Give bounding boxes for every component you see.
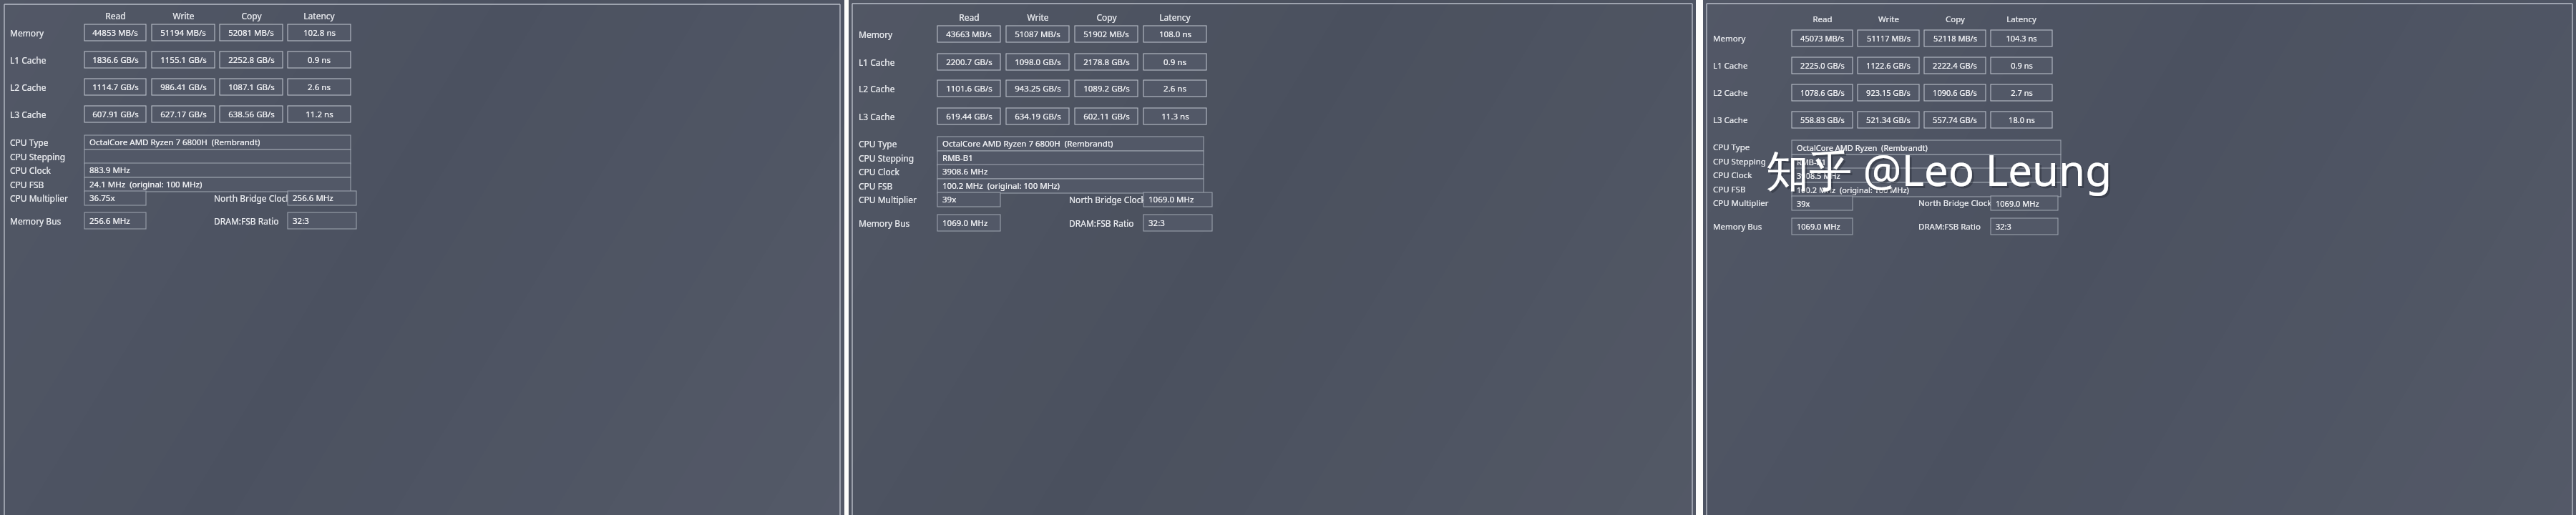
button[interactable]: 100.2 MHz (original: 100 MHz) <box>937 179 1204 193</box>
button[interactable]: 11.2 ns <box>288 106 351 122</box>
staticText: 1069.0 MHz <box>1148 194 1194 205</box>
staticText: 2178.8 GB/s <box>1083 57 1130 68</box>
staticText: 619.44 GB/s <box>946 111 992 122</box>
staticText: L3 Cache <box>859 111 895 122</box>
staticText: North Bridge Clock <box>214 192 291 204</box>
staticText: CPU Clock <box>1713 170 1752 181</box>
button[interactable]: 923.15 GB/s <box>1858 84 1919 101</box>
button[interactable]: 1114.7 GB/s <box>84 79 146 95</box>
button[interactable]: 1078.6 GB/s <box>1792 84 1853 101</box>
button[interactable]: 521.34 GB/s <box>1858 112 1919 128</box>
staticText: L1 Cache <box>1713 60 1748 72</box>
button[interactable]: 2.7 ns <box>1991 84 2052 101</box>
button[interactable]: 1101.6 GB/s <box>937 80 1000 97</box>
button[interactable]: 602.11 GB/s <box>1075 108 1138 124</box>
staticText: 923.15 GB/s <box>1866 87 1911 98</box>
button[interactable]: 2225.0 GB/s <box>1792 57 1853 74</box>
staticText: DRAM:FSB Ratio <box>214 215 279 227</box>
button[interactable]: 45073 MB/s <box>1792 30 1853 46</box>
button[interactable]: 24.1 MHz (original: 100 MHz) <box>84 177 351 192</box>
button[interactable]: 0.9 ns <box>1991 57 2052 74</box>
button[interactable] <box>84 149 351 164</box>
button[interactable]: 2.6 ns <box>288 79 351 95</box>
staticText: CPU FSB <box>1713 184 1746 195</box>
button[interactable]: 1836.6 GB/s <box>84 51 146 68</box>
button[interactable]: 100.2 MHz (original: 100 MHz) <box>1792 182 2061 197</box>
button[interactable]: 1122.6 GB/s <box>1858 57 1919 74</box>
button[interactable]: 1090.6 GB/s <box>1924 84 1986 101</box>
staticText: 36.75x <box>89 192 115 204</box>
button[interactable]: 1069.0 MHz <box>1792 218 1853 235</box>
button[interactable]: 52081 MB/s <box>220 24 283 41</box>
button[interactable]: 1089.2 GB/s <box>1075 80 1138 97</box>
button[interactable]: 51117 MB/s <box>1858 30 1919 46</box>
staticText: 1114.7 GB/s <box>92 82 139 93</box>
staticText: CPU Clock <box>10 165 51 176</box>
staticText: OctalCore AMD Ryzen 7 6800H (Rembrandt) <box>942 138 1113 149</box>
button[interactable]: 1098.0 GB/s <box>1006 54 1069 70</box>
button[interactable]: 1069.0 MHz <box>1991 196 2058 210</box>
button[interactable]: OctalCore AMD Ryzen 7 6800H (Rembrandt) <box>84 135 351 149</box>
button[interactable]: 32:3 <box>1143 215 1212 231</box>
button[interactable]: 39x <box>937 192 1000 207</box>
button[interactable]: 1087.1 GB/s <box>220 79 283 95</box>
button[interactable]: 607.91 GB/s <box>84 106 146 122</box>
button[interactable]: 44853 MB/s <box>84 24 146 41</box>
button[interactable]: 2200.7 GB/s <box>937 54 1000 70</box>
button[interactable]: RMB-B1 <box>1792 154 2061 169</box>
staticText: Copy <box>241 10 262 21</box>
staticText: Memory <box>10 27 44 39</box>
button[interactable]: 619.44 GB/s <box>937 108 1000 124</box>
button[interactable]: 986.41 GB/s <box>152 79 215 95</box>
button[interactable]: 51902 MB/s <box>1075 26 1138 42</box>
staticText: 2.7 ns <box>2011 87 2033 98</box>
button[interactable]: 2252.8 GB/s <box>220 51 283 68</box>
button[interactable]: 256.6 MHz <box>84 212 146 229</box>
button[interactable]: 108.0 ns <box>1143 26 1206 42</box>
staticText: 557.74 GB/s <box>1933 114 1977 125</box>
staticText: 2225.0 GB/s <box>1800 60 1845 71</box>
staticText: 11.2 ns <box>306 109 333 120</box>
button[interactable]: 627.17 GB/s <box>152 106 215 122</box>
staticText: CPU FSB <box>10 179 44 190</box>
button[interactable]: 39x <box>1792 196 1853 210</box>
button[interactable]: 51087 MB/s <box>1006 26 1069 42</box>
button[interactable]: 1069.0 MHz <box>937 215 1000 231</box>
button[interactable]: 102.8 ns <box>288 24 351 41</box>
staticText: Memory <box>859 29 893 40</box>
button[interactable]: 51194 MB/s <box>152 24 215 41</box>
button[interactable]: 558.83 GB/s <box>1792 112 1853 128</box>
button[interactable]: 2.6 ns <box>1143 80 1206 97</box>
button[interactable]: 0.9 ns <box>288 51 351 68</box>
button[interactable]: 3908.6 MHz <box>937 165 1204 179</box>
button[interactable]: 18.0 ns <box>1991 112 2052 128</box>
button[interactable]: 557.74 GB/s <box>1924 112 1986 128</box>
button[interactable]: 32:3 <box>1991 218 2058 235</box>
button[interactable]: 1155.1 GB/s <box>152 51 215 68</box>
staticText: 1069.0 MHz <box>942 217 988 229</box>
button[interactable]: OctalCore AMD Ryzen 7 6800H (Rembrandt) <box>937 137 1204 151</box>
button[interactable]: 43663 MB/s <box>937 26 1000 42</box>
button[interactable]: OctalCore AMD Ryzen (Rembrandt) <box>1792 140 2061 154</box>
button[interactable]: 32:3 <box>288 212 356 229</box>
staticText: Memory Bus <box>859 217 910 229</box>
button[interactable]: 11.3 ns <box>1143 108 1206 124</box>
button[interactable]: 52118 MB/s <box>1924 30 1986 46</box>
button[interactable]: 0.9 ns <box>1143 54 1206 70</box>
button[interactable]: 36.75x <box>84 191 146 205</box>
button[interactable]: 256.6 MHz <box>288 191 356 205</box>
button[interactable]: 2178.8 GB/s <box>1075 54 1138 70</box>
button[interactable]: 943.25 GB/s <box>1006 80 1069 97</box>
button[interactable]: 1069.0 MHz <box>1143 192 1212 207</box>
button[interactable]: 3908.5 MHz <box>1792 168 2061 182</box>
button[interactable]: 104.3 ns <box>1991 30 2052 46</box>
button[interactable]: 2222.4 GB/s <box>1924 57 1986 74</box>
staticText: Latency <box>2006 14 2036 25</box>
button[interactable]: RMB-B1 <box>937 151 1204 165</box>
staticText: 32:3 <box>293 215 309 227</box>
staticText: 100.2 MHz (original: 100 MHz) <box>942 180 1060 192</box>
button[interactable]: 883.9 MHz <box>84 163 351 177</box>
button[interactable]: 638.56 GB/s <box>220 106 283 122</box>
button[interactable]: 634.19 GB/s <box>1006 108 1069 124</box>
staticText: Memory Bus <box>1713 221 1762 232</box>
